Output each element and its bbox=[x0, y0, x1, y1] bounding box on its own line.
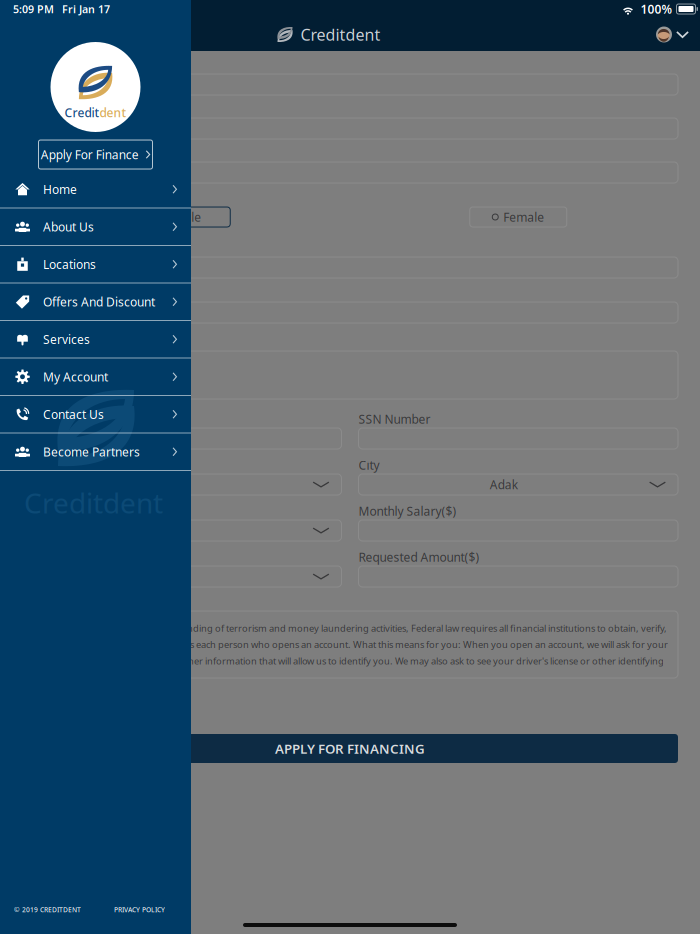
staticText: Home bbox=[43, 181, 77, 197]
staticText: 100% bbox=[640, 1, 672, 17]
staticText: name, address, date of birth and other i… bbox=[36, 655, 664, 667]
button[interactable]: © 2019 CREDITDENT bbox=[14, 905, 81, 914]
button[interactable]: Contact Us bbox=[0, 396, 191, 433]
button[interactable]: My Account bbox=[0, 358, 191, 396]
staticText: Contact Us bbox=[43, 406, 104, 422]
button[interactable]: Female bbox=[470, 207, 567, 227]
staticText: About Us bbox=[43, 219, 94, 235]
staticText: dent bbox=[99, 104, 126, 120]
staticText: Become Partners bbox=[43, 444, 140, 460]
button[interactable]: Offers And Discount bbox=[0, 283, 191, 321]
staticText: SSN Number bbox=[358, 411, 430, 427]
staticText: and record information that identifies e… bbox=[32, 638, 668, 651]
staticText: Locations bbox=[43, 256, 96, 272]
staticText: Female bbox=[503, 209, 544, 225]
staticText: Adak bbox=[490, 476, 518, 492]
button[interactable]: Services bbox=[0, 321, 191, 358]
button[interactable]: Apply For Finance bbox=[38, 140, 152, 169]
staticText: Offers And Discount bbox=[43, 294, 155, 310]
staticText: Employment Status bbox=[22, 503, 130, 519]
staticText: PRIVACY POLICY bbox=[114, 905, 165, 914]
staticText: Creditdent bbox=[24, 484, 163, 521]
staticText: 5:09 PM bbox=[13, 2, 54, 16]
button[interactable]: PRIVACY POLICY bbox=[114, 905, 165, 914]
staticText: Monthly Salary($) bbox=[358, 503, 456, 519]
button[interactable]: Become Partners bbox=[0, 433, 191, 471]
staticText: To help the government fight the funding… bbox=[33, 622, 667, 634]
staticText: Apply For Finance bbox=[41, 146, 139, 162]
staticText: © 2019 CREDITDENT bbox=[14, 905, 81, 914]
staticText: Address bbox=[22, 411, 68, 427]
button[interactable]: About Us bbox=[0, 208, 191, 246]
staticText: Services bbox=[43, 331, 90, 347]
staticText: My Account bbox=[43, 369, 108, 385]
button[interactable]: Home bbox=[0, 171, 191, 208]
staticText: Fri Jan 17 bbox=[62, 2, 110, 16]
staticText: Male bbox=[173, 209, 201, 225]
button[interactable]: Locations bbox=[0, 246, 191, 283]
button[interactable]: APPLY FOR FINANCING bbox=[22, 734, 678, 763]
staticText: Requested Amount($) bbox=[358, 549, 479, 565]
staticText: State bbox=[22, 457, 51, 473]
staticText: APPLY FOR FINANCING bbox=[275, 740, 425, 757]
button[interactable]: Male bbox=[133, 207, 230, 227]
staticText: Creditdent bbox=[300, 24, 380, 45]
staticText: City bbox=[358, 457, 379, 473]
staticText: Credit bbox=[64, 104, 99, 120]
